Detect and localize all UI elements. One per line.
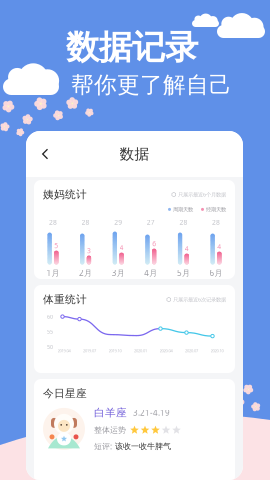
staticText: 28 — [179, 218, 187, 227]
staticText: 55 — [47, 328, 53, 335]
staticText: 29 — [114, 218, 122, 227]
staticText: 6月 — [209, 267, 222, 278]
staticText: 2020.04 — [159, 348, 172, 353]
staticText: 3.21-4.19 — [133, 407, 170, 418]
staticText: 4 — [119, 243, 123, 252]
staticText: 60 — [47, 313, 53, 320]
staticText: 姨妈统计 — [43, 188, 87, 201]
staticText: 5 — [54, 241, 58, 250]
staticText: 27 — [147, 218, 155, 227]
staticText: 今日星座 — [43, 387, 87, 400]
staticText: 2020.01 — [134, 348, 147, 353]
staticText: 2020.10 — [210, 348, 223, 353]
staticText: 3 — [87, 246, 91, 255]
staticText: 短评: — [94, 441, 112, 452]
staticText: 帮你更了解自己 — [71, 71, 232, 99]
staticText: 数据 — [119, 145, 149, 163]
staticText: 28 — [212, 218, 220, 227]
staticText: 4 — [185, 244, 189, 253]
staticText: 28 — [49, 218, 57, 227]
staticText: 5月 — [177, 267, 190, 278]
staticText: 白羊座 — [94, 406, 127, 419]
staticText: 经期天数 — [206, 206, 226, 213]
staticText: 2019.04 — [57, 348, 70, 353]
staticText: 2020.07 — [185, 348, 198, 353]
staticText: 数据记录 — [66, 27, 198, 68]
staticText: 该收一收牛脾气 — [115, 441, 171, 451]
staticText: 3月 — [112, 267, 125, 278]
staticText: 只展示最近6个月数据 — [178, 191, 226, 198]
staticText: 只展示最近6次记录数据 — [173, 296, 226, 303]
staticText: 整体运势 — [94, 425, 126, 435]
staticText: 4月 — [144, 267, 157, 278]
staticText: 1月 — [46, 267, 59, 278]
staticText: 4 — [217, 242, 221, 251]
staticText: 50 — [47, 343, 53, 350]
staticText: 6 — [152, 239, 156, 248]
staticText: 体重统计 — [43, 293, 87, 306]
staticText: 2月 — [79, 267, 92, 278]
button[interactable]: 返回 — [26, 141, 61, 166]
staticText: 2019.10 — [108, 348, 121, 353]
staticText: 2019.07 — [83, 348, 96, 353]
staticText: 28 — [82, 218, 90, 227]
staticText: 周期天数 — [173, 206, 193, 213]
